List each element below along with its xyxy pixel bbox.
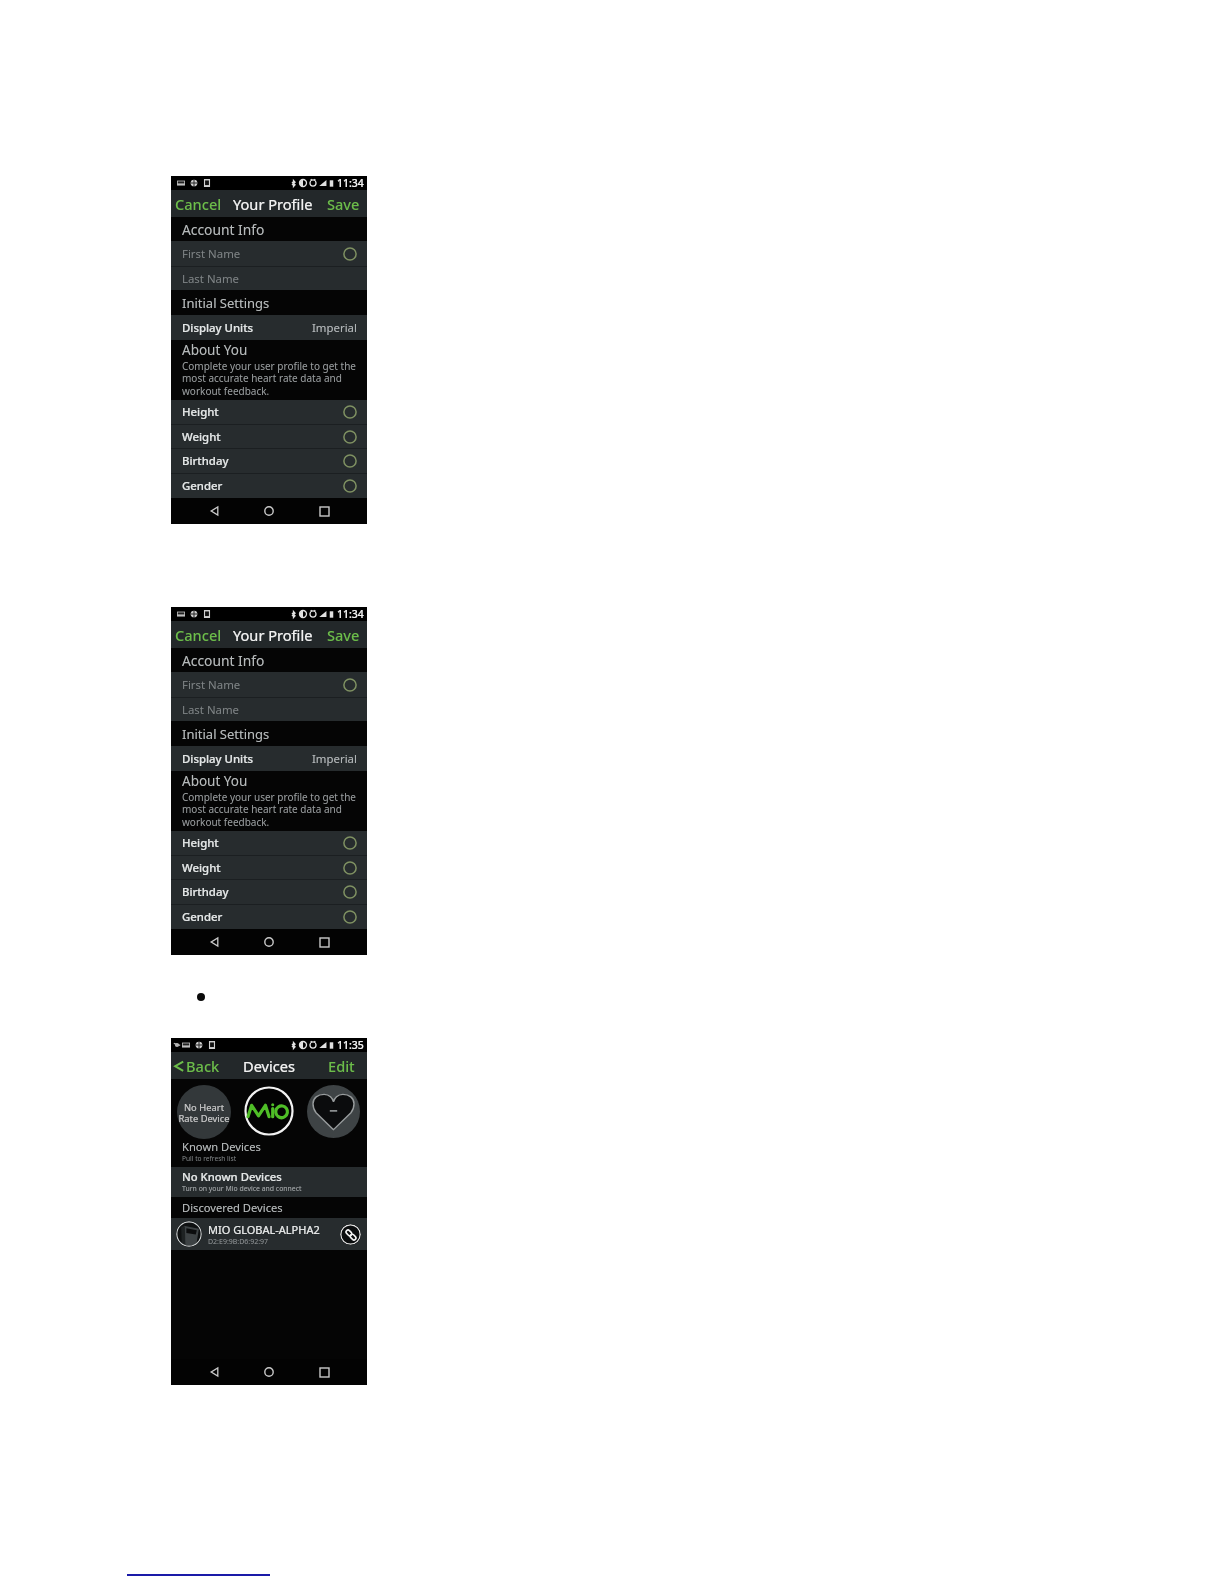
button[interactable]: No Known Devices: [171, 1167, 367, 1197]
staticText: About You: [182, 341, 248, 359]
button[interactable]: MIO GLOBAL-ALPHA2: [171, 1218, 367, 1250]
staticText: Your Profile: [233, 625, 313, 645]
staticText: Account Info: [182, 651, 265, 670]
staticText: Turn on your Mio device and connect: [182, 1184, 302, 1193]
staticText: Discovered Devices: [182, 1200, 283, 1215]
staticText: Imperial: [312, 751, 357, 767]
staticText: Height: [182, 404, 219, 420]
staticText: Gender: [182, 478, 223, 494]
staticText: No Known Devices: [182, 1169, 282, 1184]
staticText: Height: [182, 835, 219, 851]
button[interactable]: Last Name: [171, 698, 367, 721]
staticText: Weight: [182, 860, 221, 876]
staticText: D2:E9:9B:D6:92:97: [208, 1237, 269, 1247]
button[interactable]: Back: [204, 931, 226, 953]
button[interactable]: First Name: [171, 672, 367, 697]
staticText: Pull to refresh list: [182, 1154, 237, 1163]
button[interactable]: Height: [171, 400, 367, 424]
button[interactable]: Gender: [171, 474, 367, 498]
staticText: 11:35: [337, 1038, 364, 1052]
staticText: 11:34: [337, 607, 364, 621]
button[interactable]: Home: [258, 1361, 280, 1383]
staticText: Initial Settings: [182, 725, 270, 743]
button[interactable]: Recents: [313, 500, 335, 522]
button[interactable]: Edit: [328, 1056, 367, 1076]
staticText: Devices: [243, 1056, 295, 1076]
button[interactable]: Gender: [171, 905, 367, 929]
button[interactable]: Heart rate: [307, 1085, 360, 1138]
staticText: Complete your user profile to get the mo…: [182, 359, 356, 398]
button[interactable]: Home: [258, 500, 280, 522]
staticText: Back: [186, 1056, 220, 1076]
staticText: MIO GLOBAL-ALPHA2: [208, 1222, 320, 1237]
button[interactable]: Recents: [313, 1361, 335, 1383]
staticText: Birthday: [182, 884, 229, 900]
button[interactable]: Pair device: [340, 1224, 361, 1245]
staticText: First Name: [182, 246, 241, 262]
button[interactable]: Save: [327, 194, 367, 214]
button[interactable]: Cancel: [171, 625, 222, 645]
button[interactable]: Last Name: [171, 267, 367, 290]
button[interactable]: Home: [258, 931, 280, 953]
button[interactable]: No Heart Rate Device: [177, 1085, 231, 1139]
staticText: Display Units: [182, 320, 254, 336]
staticText: Initial Settings: [182, 294, 270, 312]
staticText: Your Profile: [233, 194, 313, 214]
staticText: Known Devices: [182, 1139, 261, 1154]
button[interactable]: Display Units: [171, 746, 367, 771]
button[interactable]: Back: [204, 500, 226, 522]
button[interactable]: Weight: [171, 856, 367, 879]
button[interactable]: Cancel: [171, 194, 222, 214]
button[interactable]: Back: [171, 1056, 220, 1076]
staticText: 11:34: [337, 176, 364, 190]
staticText: Gender: [182, 909, 223, 925]
staticText: About You: [182, 772, 248, 790]
button[interactable]: Height: [171, 831, 367, 855]
staticText: Imperial: [312, 320, 357, 336]
button[interactable]: Birthday: [171, 880, 367, 904]
button[interactable]: Birthday: [171, 449, 367, 473]
staticText: No Heart Rate Device: [178, 1101, 230, 1124]
staticText: Birthday: [182, 453, 229, 469]
button[interactable]: Back: [204, 1361, 226, 1383]
staticText: Last Name: [182, 271, 240, 287]
staticText: Cancel: [175, 194, 222, 214]
button[interactable]: Recents: [313, 931, 335, 953]
staticText: Complete your user profile to get the mo…: [182, 790, 356, 829]
button[interactable]: Mio logo: [243, 1085, 295, 1137]
staticText: Weight: [182, 429, 221, 445]
staticText: Cancel: [175, 625, 222, 645]
staticText: Last Name: [182, 702, 240, 718]
staticText: Display Units: [182, 751, 254, 767]
button[interactable]: Save: [327, 625, 367, 645]
button[interactable]: Display Units: [171, 315, 367, 340]
button[interactable]: Weight: [171, 425, 367, 448]
staticText: Account Info: [182, 220, 265, 239]
button[interactable]: First Name: [171, 241, 367, 266]
staticText: First Name: [182, 677, 241, 693]
